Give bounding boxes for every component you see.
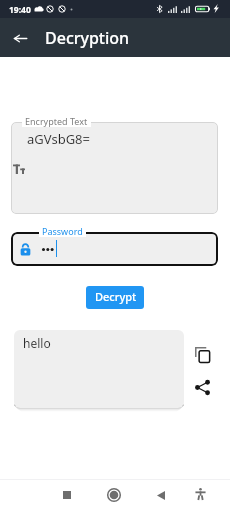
button[interactable]: aGVsbG8=	[11, 122, 218, 214]
button[interactable]: Back	[148, 482, 174, 508]
staticText: Decrypt	[95, 289, 137, 304]
button[interactable]: Accessibility	[187, 481, 213, 507]
button[interactable]: Decrypt	[86, 286, 144, 309]
staticText: Encrypted Text	[25, 115, 88, 127]
button[interactable]: Home	[101, 482, 127, 508]
button[interactable]: Copy	[192, 344, 213, 365]
button[interactable]: Back	[6, 24, 34, 52]
button[interactable]	[11, 232, 218, 266]
staticText: Decryption	[45, 27, 130, 49]
staticText: Password	[42, 225, 83, 237]
staticText: 19:40	[9, 4, 31, 16]
button[interactable]: hello	[14, 330, 184, 408]
staticText: aGVsbG8=	[27, 130, 90, 148]
button[interactable]: Recents	[54, 482, 80, 508]
staticText: hello	[23, 335, 51, 351]
button[interactable]: Share	[192, 377, 213, 398]
